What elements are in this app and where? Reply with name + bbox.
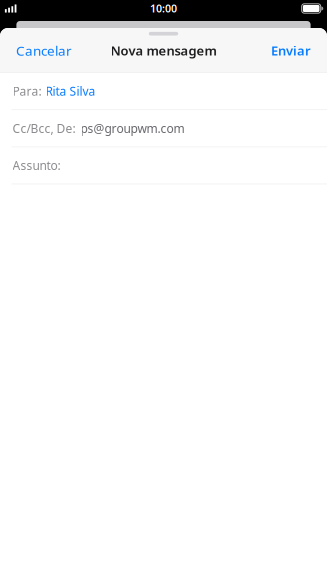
button[interactable]: Cc/Bcc, De: xyxy=(0,110,327,146)
button[interactable]: Para: xyxy=(0,73,327,109)
staticText: 10:00 xyxy=(150,1,177,15)
staticText: Cancelar xyxy=(16,41,72,60)
staticText: Nova mensagem xyxy=(110,42,216,59)
button[interactable]: Assunto: xyxy=(0,147,327,184)
button[interactable]: Cancelar xyxy=(16,34,72,67)
staticText: ps@groupwm.com xyxy=(80,120,184,136)
staticText: Para: xyxy=(12,83,41,99)
staticText: Cc/Bcc, De: xyxy=(12,120,75,136)
staticText: Assunto: xyxy=(12,157,60,173)
staticText: Enviar xyxy=(271,42,311,59)
button[interactable]: Enviar xyxy=(271,35,311,66)
staticText: Rita Silva xyxy=(45,83,95,99)
